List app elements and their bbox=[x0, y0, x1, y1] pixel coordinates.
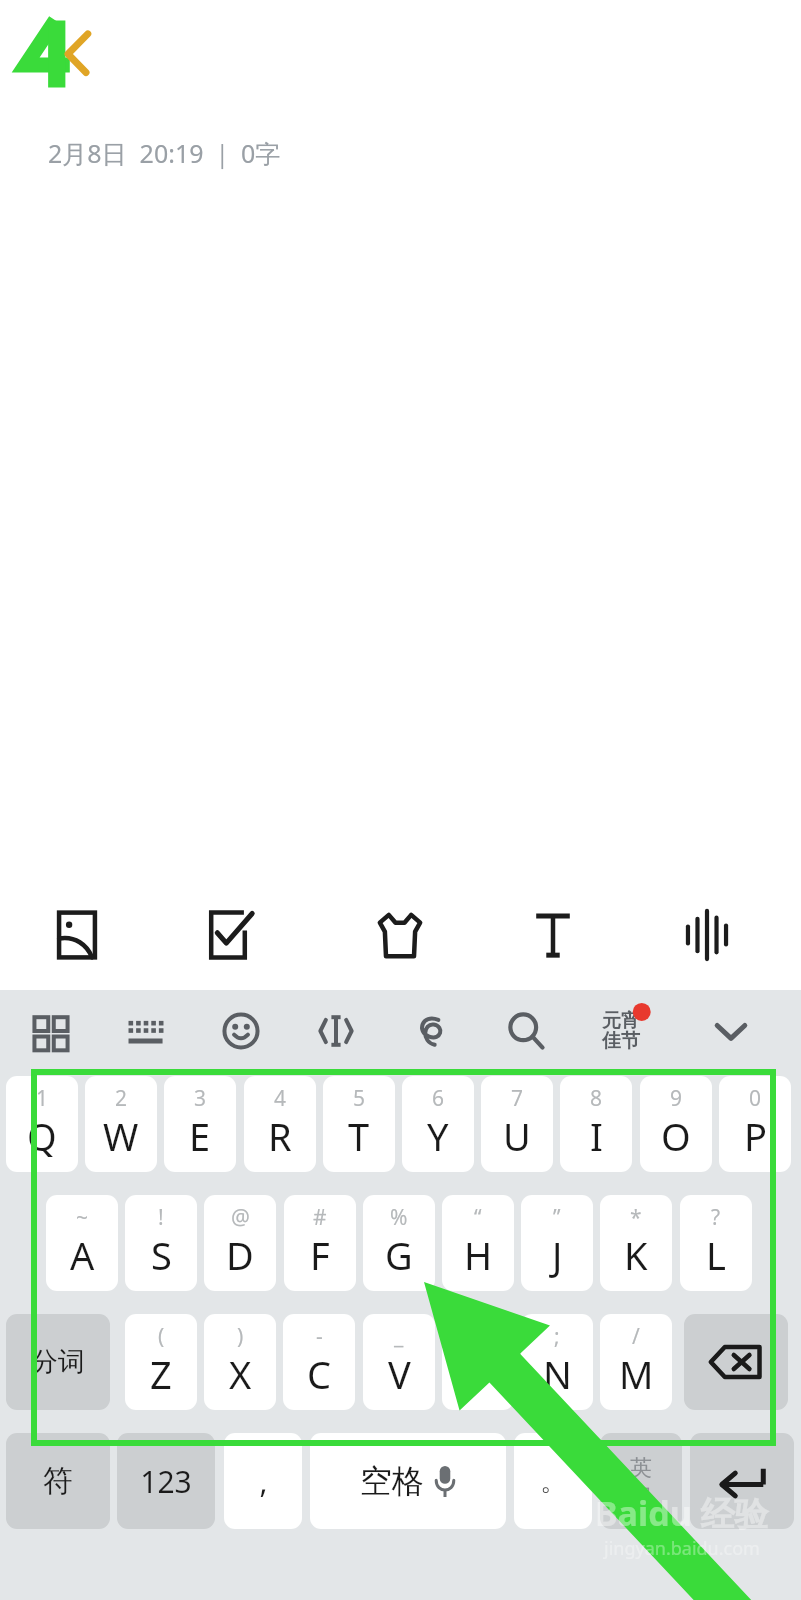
staticText: Baidu 经验 bbox=[595, 1490, 769, 1536]
button[interactable]: Hide keyboard bbox=[695, 992, 767, 1070]
button[interactable]: ? bbox=[680, 1195, 752, 1291]
button[interactable]: Festival theme bbox=[585, 992, 657, 1070]
staticText: 5 bbox=[353, 1084, 366, 1113]
staticText: ~ bbox=[76, 1203, 89, 1232]
button[interactable]: - bbox=[283, 1314, 355, 1410]
staticText: Z bbox=[150, 1348, 172, 1400]
button[interactable]: ) bbox=[204, 1314, 276, 1410]
button[interactable]: Enter bbox=[690, 1433, 794, 1529]
button[interactable]: Edit cursor bbox=[300, 992, 372, 1070]
staticText: / bbox=[632, 1322, 640, 1351]
staticText: ! bbox=[158, 1203, 164, 1232]
button[interactable]: _ bbox=[363, 1314, 435, 1410]
button[interactable]: , bbox=[224, 1433, 302, 1529]
button[interactable]: ” bbox=[521, 1195, 593, 1291]
button[interactable]: 6 bbox=[402, 1076, 474, 1172]
staticText: H bbox=[464, 1229, 493, 1281]
button[interactable]: @ bbox=[204, 1195, 276, 1291]
button[interactable]: 123 bbox=[117, 1433, 215, 1529]
staticText: 3 bbox=[194, 1084, 207, 1113]
staticText: C bbox=[307, 1348, 332, 1400]
staticText: K bbox=[624, 1229, 648, 1281]
button[interactable]: ( bbox=[125, 1314, 197, 1410]
button[interactable]: 4 bbox=[244, 1076, 316, 1172]
button[interactable]: ! bbox=[125, 1195, 197, 1291]
staticText: ” bbox=[553, 1203, 561, 1232]
button[interactable]: * bbox=[600, 1195, 672, 1291]
staticText: M bbox=[619, 1348, 654, 1400]
staticText: V bbox=[388, 1348, 411, 1400]
staticText: D bbox=[226, 1229, 254, 1281]
staticText: _ bbox=[394, 1322, 404, 1351]
button[interactable]: Clipboard bbox=[395, 992, 467, 1070]
button[interactable]: Checklist bbox=[190, 898, 266, 972]
staticText: E bbox=[189, 1110, 211, 1162]
staticText: L bbox=[706, 1229, 726, 1281]
button[interactable]: ; bbox=[521, 1314, 593, 1410]
button[interactable]: Keyboard layout bbox=[110, 992, 182, 1070]
button[interactable]: Search bbox=[490, 992, 562, 1070]
button[interactable]: 英 中 bbox=[600, 1433, 682, 1529]
staticText: 4 bbox=[274, 1084, 287, 1113]
staticText: P bbox=[744, 1110, 767, 1162]
staticText: 6 bbox=[432, 1084, 445, 1113]
staticText: A bbox=[70, 1229, 95, 1281]
staticText: 8 bbox=[590, 1084, 603, 1113]
button[interactable]: Emoji bbox=[205, 992, 277, 1070]
staticText: ) bbox=[237, 1322, 244, 1351]
staticText: @ bbox=[231, 1203, 250, 1232]
staticText: 0 bbox=[749, 1084, 762, 1113]
button[interactable]: Text style bbox=[515, 898, 591, 972]
staticText: jingyan.baidu.com bbox=[604, 1536, 760, 1561]
staticText: X bbox=[229, 1348, 252, 1400]
button[interactable]: % bbox=[363, 1195, 435, 1291]
staticText: 1 bbox=[36, 1084, 49, 1113]
staticText: 空格 bbox=[360, 1461, 424, 1501]
staticText: J bbox=[552, 1229, 563, 1281]
button[interactable]: Backspace bbox=[684, 1314, 788, 1410]
staticText: * bbox=[630, 1203, 642, 1232]
button[interactable]: 符 bbox=[6, 1433, 110, 1529]
staticText: S bbox=[151, 1229, 172, 1281]
staticText: % bbox=[390, 1203, 408, 1232]
button[interactable]: Voice input bbox=[669, 898, 745, 972]
button[interactable]: 5 bbox=[323, 1076, 395, 1172]
button[interactable]: 空格 bbox=[310, 1433, 506, 1529]
button[interactable]: 。 bbox=[514, 1433, 592, 1529]
button[interactable]: “ bbox=[442, 1195, 514, 1291]
staticText: 英 中 bbox=[630, 1454, 652, 1508]
button[interactable]: 8 bbox=[560, 1076, 632, 1172]
staticText: 分词 bbox=[31, 1345, 85, 1379]
button[interactable]: # bbox=[284, 1195, 356, 1291]
button[interactable]: 分词 bbox=[6, 1314, 110, 1410]
staticText: U bbox=[503, 1110, 531, 1162]
staticText: Q bbox=[27, 1110, 57, 1162]
button[interactable]: 9 bbox=[640, 1076, 712, 1172]
staticText: 符 bbox=[43, 1462, 73, 1500]
button[interactable]: 7 bbox=[481, 1076, 553, 1172]
staticText: 。 bbox=[540, 1465, 566, 1498]
button[interactable]: / bbox=[600, 1314, 672, 1410]
button[interactable]: 3 bbox=[164, 1076, 236, 1172]
staticText: W bbox=[103, 1110, 139, 1162]
button[interactable]: ~ bbox=[46, 1195, 118, 1291]
button[interactable]: 2 bbox=[85, 1076, 157, 1172]
staticText: O bbox=[661, 1110, 691, 1162]
staticText: ? bbox=[711, 1203, 721, 1232]
staticText: ( bbox=[158, 1322, 165, 1351]
staticText: N bbox=[543, 1348, 572, 1400]
button[interactable]: 1 bbox=[6, 1076, 78, 1172]
button[interactable]: B bbox=[442, 1314, 514, 1410]
staticText: , bbox=[259, 1461, 268, 1502]
staticText: R bbox=[268, 1110, 292, 1162]
button[interactable]: Panel bbox=[15, 992, 87, 1070]
button[interactable]: Insert image bbox=[39, 898, 115, 972]
staticText: 9 bbox=[670, 1084, 683, 1113]
staticText: F bbox=[310, 1229, 330, 1281]
staticText: ; bbox=[554, 1322, 560, 1351]
button[interactable]: 0 bbox=[719, 1076, 791, 1172]
staticText: I bbox=[590, 1110, 603, 1162]
staticText: 元宵 佳节 bbox=[602, 1009, 640, 1053]
staticText: 123 bbox=[140, 1461, 192, 1502]
button[interactable]: Skin bbox=[362, 898, 438, 972]
